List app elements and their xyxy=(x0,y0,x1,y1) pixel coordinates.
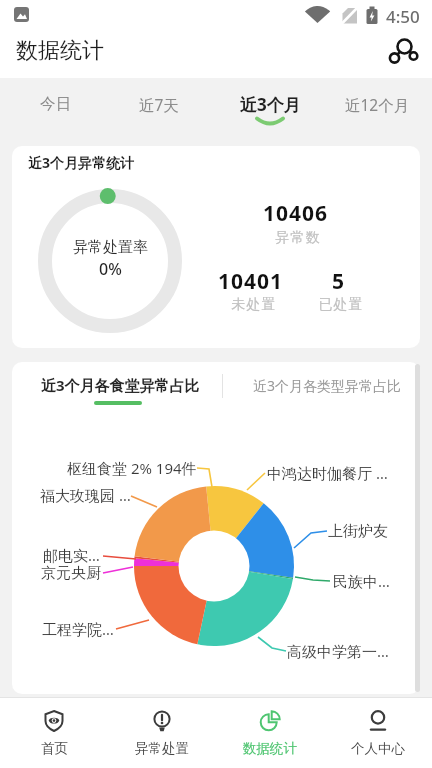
staticText: 邮电实… xyxy=(43,545,100,565)
button[interactable]: 近3个月 xyxy=(216,80,324,128)
button[interactable]: 首页 xyxy=(0,698,108,768)
staticText: 数据统计 xyxy=(243,740,297,757)
staticText: 未处置 xyxy=(231,296,276,314)
staticText: 0% xyxy=(99,258,122,280)
staticText: 枢纽食堂 2% 194件 xyxy=(67,458,197,478)
staticText: 今日 xyxy=(40,94,71,114)
staticText: 京元央厨 xyxy=(41,564,101,583)
button[interactable] xyxy=(388,34,420,66)
button[interactable]: 个人中心 xyxy=(324,698,432,768)
staticText: 近12个月 xyxy=(345,94,410,115)
button[interactable]: 今日 xyxy=(1,80,109,128)
staticText: 个人中心 xyxy=(351,740,405,757)
button[interactable]: 近12个月 xyxy=(323,80,431,128)
staticText: 10401 xyxy=(218,267,284,295)
staticText: 近3个月 xyxy=(240,93,301,116)
staticText: 10406 xyxy=(263,199,329,227)
staticText: 近7天 xyxy=(139,94,179,115)
staticText: 民族中… xyxy=(333,571,390,591)
button[interactable]: 近7天 xyxy=(105,80,213,128)
button[interactable]: 异常处置 xyxy=(108,698,216,768)
staticText: 中鸿达时伽餐厅 … xyxy=(267,463,388,483)
staticText: 高级中学第一… xyxy=(287,641,389,661)
staticText: 异常处置 xyxy=(135,740,189,757)
staticText: 近3个月各食堂异常占比 xyxy=(41,375,200,395)
staticText: 已处置 xyxy=(318,296,363,314)
button[interactable]: 近3个月各食堂异常占比 xyxy=(20,370,220,400)
staticText: 福大玫瑰园 … xyxy=(40,485,131,505)
button[interactable]: 数据统计 xyxy=(216,698,324,768)
staticText: 近3个月异常统计 xyxy=(28,153,135,172)
staticText: 上街炉友 xyxy=(328,522,388,541)
staticText: 5 xyxy=(332,267,345,295)
staticText: 近3个月各类型异常占比 xyxy=(253,376,402,395)
staticText: 4:50 xyxy=(386,5,420,27)
staticText: 异常处置率 xyxy=(73,238,148,257)
staticText: 工程学院… xyxy=(42,619,114,639)
staticText: 首页 xyxy=(41,740,68,757)
staticText: 数据统计 xyxy=(16,37,104,65)
button[interactable]: 近3个月各类型异常占比 xyxy=(227,370,420,400)
staticText: 异常数 xyxy=(275,229,320,247)
